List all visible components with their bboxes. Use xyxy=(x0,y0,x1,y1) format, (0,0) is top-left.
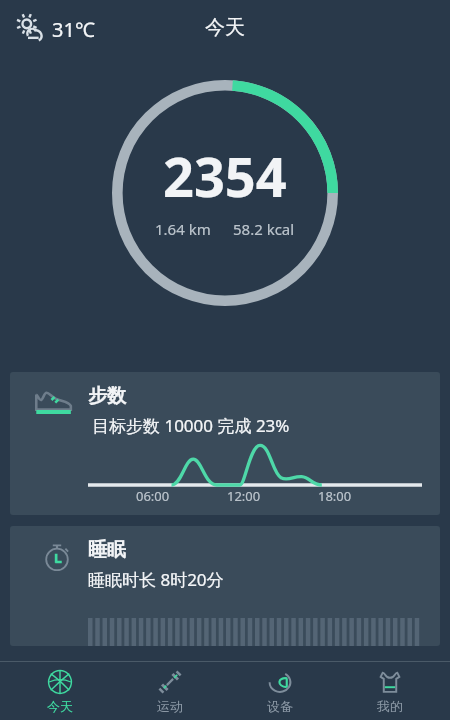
staticText: 步数 xyxy=(88,384,126,408)
staticText: 我的 xyxy=(377,698,403,714)
staticText: 今天 xyxy=(47,698,73,714)
staticText: 06:00 xyxy=(136,487,170,505)
staticText: 运动 xyxy=(157,698,183,714)
button[interactable]: 步数 xyxy=(10,372,440,515)
staticText: 睡眠 xyxy=(88,538,126,562)
button[interactable]: 睡眠 xyxy=(10,526,440,646)
staticText: 今天 xyxy=(205,15,245,40)
staticText: 1.64 km xyxy=(155,219,211,239)
button[interactable]: 运动 xyxy=(120,665,220,718)
button[interactable]: Weather xyxy=(10,9,99,49)
other: Weather xyxy=(14,13,46,45)
staticText: 58.2 kcal xyxy=(233,219,295,239)
button[interactable]: 设备 xyxy=(230,665,330,718)
staticText: 18:00 xyxy=(318,487,352,505)
button[interactable]: 今天 xyxy=(10,665,110,718)
staticText: 12:00 xyxy=(227,487,261,505)
button[interactable]: 2354 xyxy=(112,80,338,306)
staticText: 2354 xyxy=(163,139,287,213)
staticText: 睡眠时长 8时20分 xyxy=(88,568,224,591)
staticText: 31℃ xyxy=(52,16,95,43)
staticText: 设备 xyxy=(267,698,293,714)
button[interactable]: 我的 xyxy=(340,665,440,718)
staticText: 目标步数 10000 完成 23% xyxy=(92,414,290,437)
